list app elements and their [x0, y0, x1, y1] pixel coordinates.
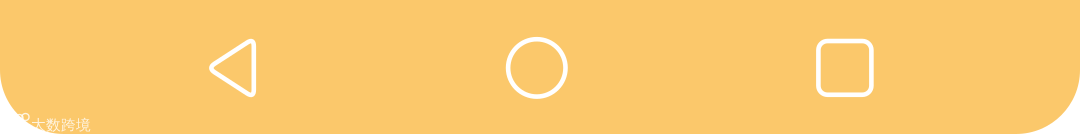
staticText: 大数跨境 [31, 116, 91, 134]
button[interactable]: Recents [804, 27, 885, 109]
button[interactable]: Home [496, 27, 577, 109]
button[interactable]: Back [194, 24, 268, 112]
